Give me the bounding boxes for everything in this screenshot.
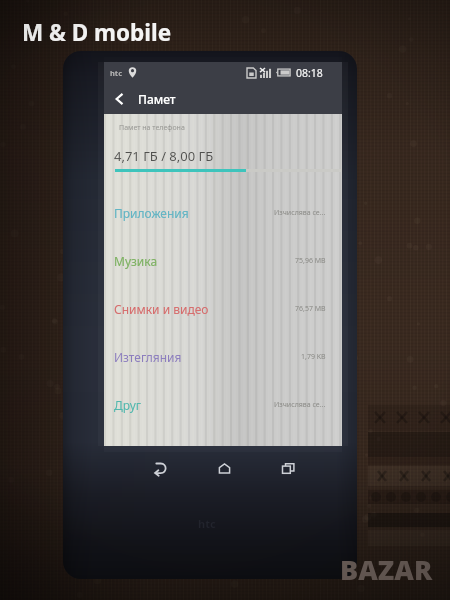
staticText: M & D mobile: [22, 17, 172, 48]
button[interactable]: Back: [104, 83, 342, 114]
button[interactable]: Back: [145, 453, 175, 483]
staticText: 1,79 KB: [301, 352, 326, 362]
staticText: htc: [110, 68, 122, 78]
staticText: Друг: [114, 397, 142, 413]
staticText: 4,71 ГБ / 8,00 ГБ: [114, 147, 214, 165]
staticText: Памет: [138, 91, 176, 107]
staticText: htc: [198, 516, 216, 531]
button[interactable]: Recent apps: [273, 453, 303, 483]
staticText: 76,57 MB: [295, 304, 326, 314]
button[interactable]: Друг: [104, 381, 342, 429]
staticText: Приложения: [114, 205, 189, 221]
button[interactable]: Home: [209, 453, 239, 483]
staticText: 75,96 MB: [295, 256, 326, 266]
staticText: 08:18: [296, 66, 323, 80]
staticText: Памет на телефона: [119, 123, 185, 133]
staticText: Снимки и видео: [114, 301, 209, 317]
staticText: Музика: [114, 253, 158, 269]
staticText: Изчислява се...: [274, 400, 326, 410]
staticText: Изчислява се...: [274, 208, 326, 218]
button[interactable]: Изтегляния: [104, 333, 342, 381]
staticText: BAZAR: [340, 551, 433, 588]
button[interactable]: Снимки и видео: [104, 285, 342, 333]
other: Back: [113, 92, 127, 106]
staticText: Изтегляния: [114, 349, 182, 365]
button[interactable]: Музика: [104, 237, 342, 285]
button[interactable]: Приложения: [104, 189, 342, 237]
